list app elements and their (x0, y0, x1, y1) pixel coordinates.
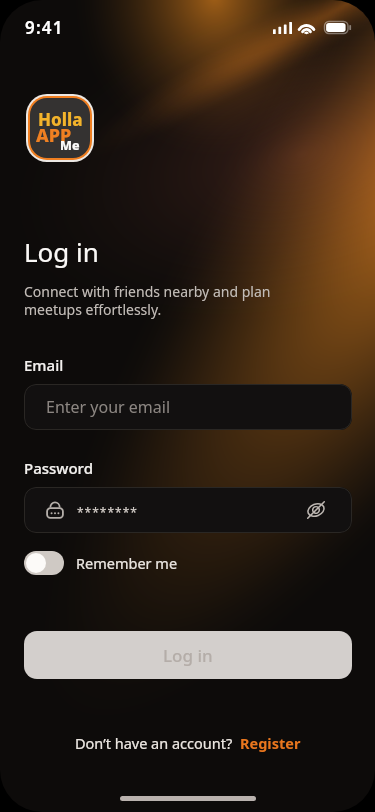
button[interactable]: Log in (24, 631, 352, 679)
staticText: Connect with friends nearby and plan mee… (24, 282, 271, 319)
staticText: Me (60, 137, 80, 154)
staticText: APP (36, 123, 72, 148)
staticText: Don’t have an account? (75, 733, 233, 753)
button[interactable]: Holla App Me logo (28, 96, 92, 160)
button[interactable]: Show password (305, 499, 327, 521)
button[interactable]: Register (240, 733, 301, 753)
staticText: Holla (38, 108, 83, 131)
staticText: 9:41 (25, 16, 64, 39)
staticText: Remember me (76, 553, 178, 573)
button[interactable]: Remember me toggle (24, 551, 64, 575)
staticText: Log in (163, 644, 213, 667)
staticText: Register (240, 733, 301, 753)
staticText: Enter your email (46, 396, 171, 418)
button[interactable]: ******** (24, 487, 352, 533)
staticText: Email (24, 355, 64, 375)
staticText: Log in (24, 234, 99, 269)
button[interactable]: Enter your email (24, 384, 352, 430)
staticText: Password (24, 458, 93, 478)
staticText: ******** (77, 504, 138, 520)
